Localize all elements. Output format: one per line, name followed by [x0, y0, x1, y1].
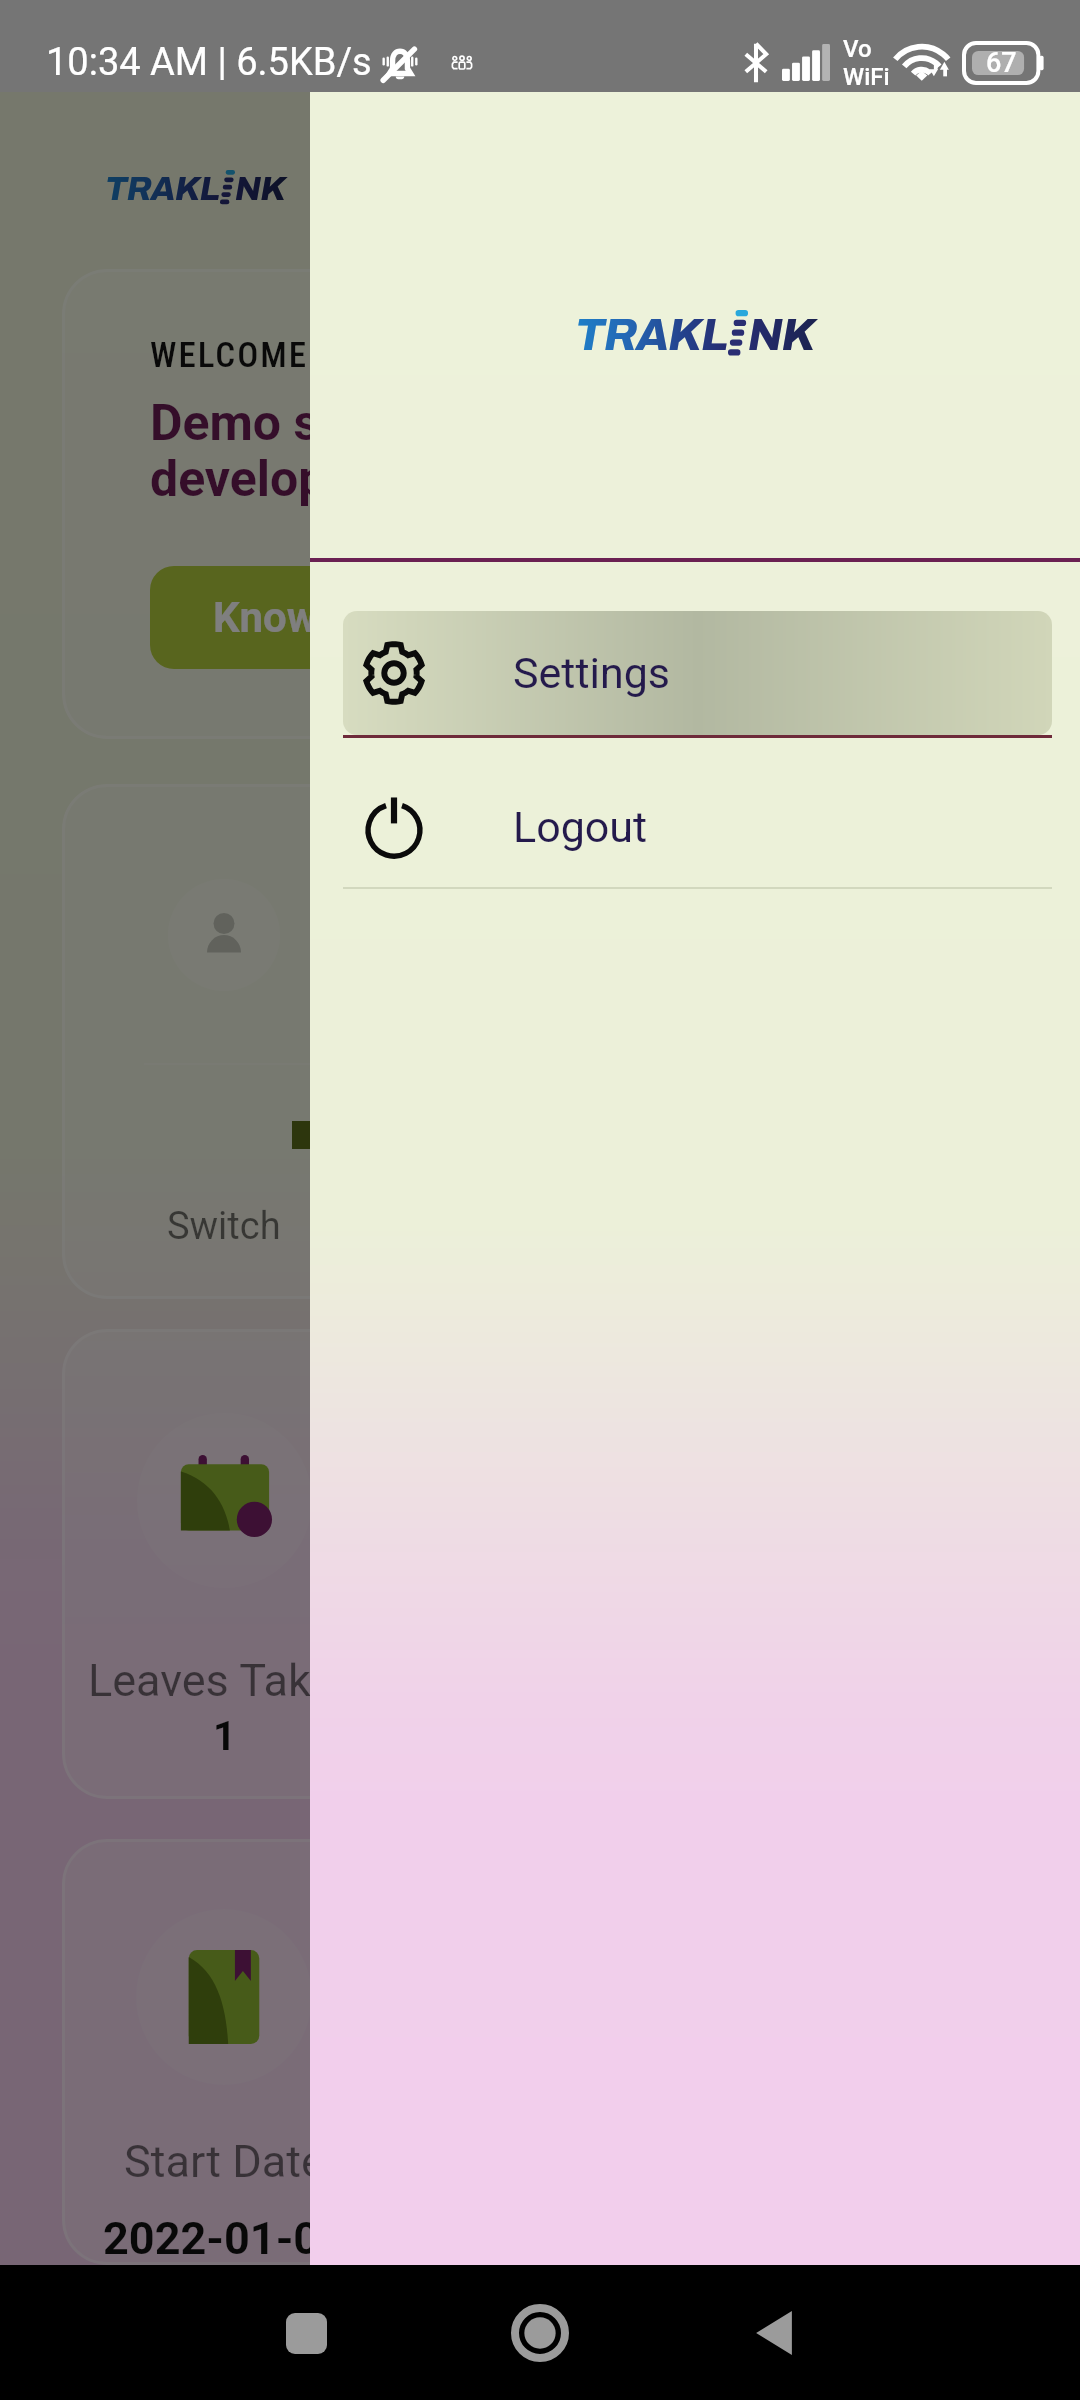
staticText: TRAKL [105, 171, 220, 207]
staticText: Leaves Taken [88, 1654, 360, 1707]
staticText: NK [235, 171, 286, 207]
staticText: 10:34 AM | 6.5KB/s [46, 40, 372, 85]
button[interactable]: Home [480, 2273, 600, 2393]
button[interactable]: Logout [343, 767, 1052, 887]
staticText: Know More [213, 593, 427, 642]
staticText: 67 [986, 47, 1017, 79]
staticText: Logout [513, 802, 648, 852]
staticText: 2022-01-01 [103, 2212, 346, 2265]
button[interactable]: Back [714, 2273, 834, 2393]
staticText: WiFi [843, 63, 890, 91]
button[interactable]: Settings [343, 611, 1052, 735]
staticText: WELCOME TO SPANDEX [150, 335, 519, 376]
staticText: NK [748, 311, 815, 359]
staticText: TRAKL [575, 311, 728, 359]
staticText: Demo software development [150, 394, 491, 509]
staticText: Start Date [124, 2135, 325, 2188]
staticText: Vo [843, 35, 872, 63]
staticText: 1 [213, 1713, 236, 1760]
staticText: Switch [167, 1204, 281, 1249]
button[interactable]: Know More [150, 566, 490, 669]
button[interactable]: Recents [246, 2273, 366, 2393]
staticText: Settings [513, 648, 671, 698]
